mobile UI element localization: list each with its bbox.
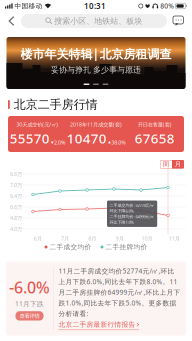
staticText: 二手成交均价 xyxy=(49,243,91,251)
button[interactable]: 月 xyxy=(172,160,184,168)
staticText: 11月下跌 xyxy=(15,299,44,308)
staticText: 38.0% xyxy=(111,139,125,146)
staticText: 北京二手房行情 xyxy=(14,97,98,112)
staticText: 开日在售量(套) xyxy=(138,121,172,128)
button[interactable]: 周 xyxy=(160,160,172,168)
staticText: 环比下降1.0% xyxy=(110,220,134,225)
staticText: 6.6万 xyxy=(10,170,22,178)
staticText: 查看详情 xyxy=(19,313,39,319)
staticText: 11月二手房成交均价52774元/㎡,环比上月下跌6.0%,同比去年下跌8.0%… xyxy=(58,266,180,318)
staticText: 4.0万 xyxy=(10,225,22,233)
staticText: 6.4万 xyxy=(10,192,22,200)
button[interactable]: 查看详情 xyxy=(15,311,43,321)
staticText: 7月 xyxy=(61,235,69,242)
staticText: 二手挂牌均价: 64999元/㎡ xyxy=(110,214,155,219)
staticText: 6月 xyxy=(34,235,42,242)
staticText: 30天成交价(元/㎡) xyxy=(16,121,58,128)
staticText: 10:31 xyxy=(84,1,106,11)
staticText: 2.0% xyxy=(54,139,65,146)
staticText: 67658 xyxy=(135,129,175,147)
staticText: 9月 xyxy=(116,235,124,242)
staticText: -6.0% xyxy=(9,277,50,298)
staticText: 7.0万 xyxy=(10,181,22,189)
staticText: 80% xyxy=(158,2,174,10)
staticText: 楼市年关特辑|北京房租调查 xyxy=(20,46,171,62)
staticText: 妥协与挣扎 多少事与愿违 xyxy=(51,65,141,75)
staticText: 11月 xyxy=(169,235,180,242)
staticText: 10470 xyxy=(67,129,107,147)
staticText: 二手成交均价: 52774元/㎡ xyxy=(110,202,155,208)
staticText: 北京二手房最新行情报告 xyxy=(58,320,135,329)
staticText: 二手挂牌均价 xyxy=(105,243,147,251)
staticText: 中国移动 xyxy=(13,2,45,10)
button[interactable]: Messages xyxy=(167,12,190,30)
staticText: 8月 xyxy=(88,235,96,242)
staticText: 6.6万 xyxy=(10,203,22,211)
staticText: 搜索小区、地铁站、板块 xyxy=(54,16,142,26)
staticText: 环比下降6.0% xyxy=(110,208,134,213)
button[interactable]: 北京二手房最新行情报告 xyxy=(58,320,139,329)
staticText: 周 xyxy=(162,160,169,168)
button[interactable]: 搜索小区、地铁站、板块 xyxy=(21,14,167,28)
staticText: 月 xyxy=(174,160,181,168)
button[interactable]: 楼市年关特辑|北京房租调查 xyxy=(6,37,185,89)
staticText: 2018年11月成交量(套) xyxy=(70,121,122,128)
staticText: 55570 xyxy=(10,129,50,147)
staticText: 4.8万 xyxy=(10,214,22,222)
staticText: 10月 xyxy=(141,235,152,242)
button[interactable]: Back xyxy=(2,12,21,30)
